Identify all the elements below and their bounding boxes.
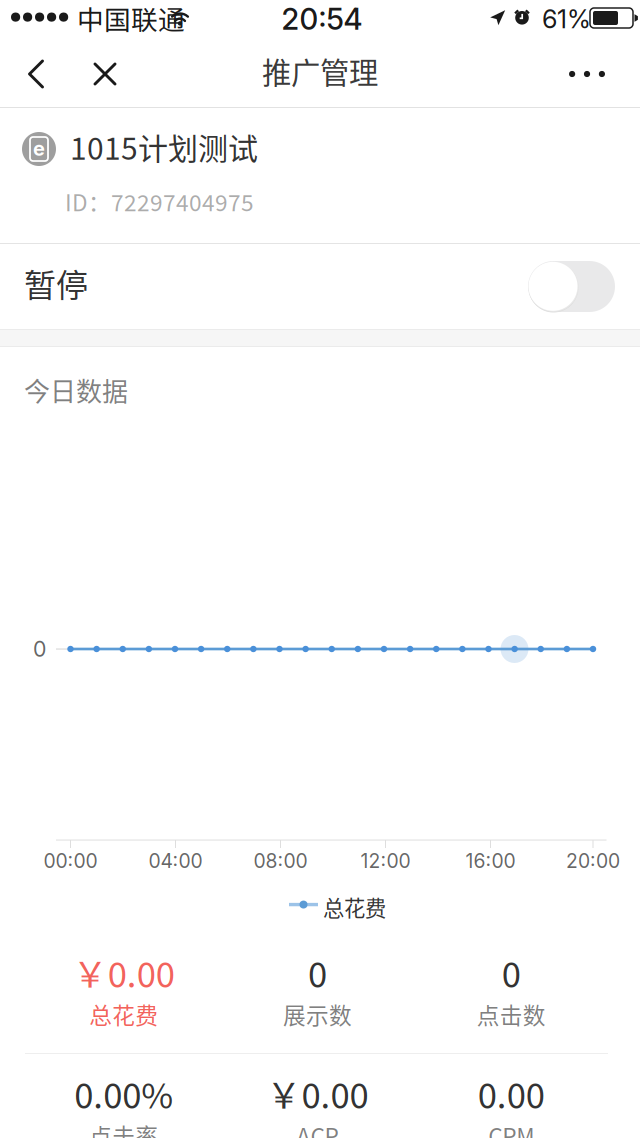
staticText: 61% <box>542 4 591 34</box>
staticText: 0 <box>308 947 327 998</box>
button[interactable]: Back <box>0 40 77 108</box>
staticText: 20:54 <box>281 1 362 37</box>
staticText: 20:00 <box>566 849 620 873</box>
button[interactable]: Close <box>77 40 125 108</box>
staticText: 总花费 <box>323 892 386 922</box>
staticText: CPM <box>488 1119 534 1138</box>
staticText: 中国联通 <box>77 0 185 37</box>
button[interactable]: More <box>547 40 640 108</box>
staticText: ￥0.00 <box>73 947 175 998</box>
staticText: ￥0.00 <box>266 1068 368 1119</box>
staticText: 今日数据 <box>24 371 128 409</box>
staticText: ID：72297404975 <box>65 185 254 218</box>
staticText: 点击率 <box>89 1119 158 1138</box>
staticText: 12:00 <box>360 849 410 873</box>
staticText: ACP <box>296 1119 338 1138</box>
staticText: 0 <box>502 947 521 998</box>
staticText: 总花费 <box>89 998 158 1030</box>
staticText: 00:00 <box>43 849 97 873</box>
staticText: 0.00 <box>478 1068 545 1119</box>
staticText: 04:00 <box>148 849 202 873</box>
staticText: 0 <box>33 636 46 662</box>
staticText: 16:00 <box>465 849 515 873</box>
button[interactable]: Pause <box>503 244 640 329</box>
staticText: 1015计划测试 <box>70 125 258 168</box>
staticText: 推广管理 <box>262 50 378 92</box>
staticText: e <box>33 136 45 161</box>
staticText: 展示数 <box>283 998 352 1030</box>
staticText: 08:00 <box>253 849 307 873</box>
staticText: 0.00% <box>74 1068 173 1119</box>
staticText: 暂停 <box>24 260 88 306</box>
staticText: 点击数 <box>477 998 546 1030</box>
